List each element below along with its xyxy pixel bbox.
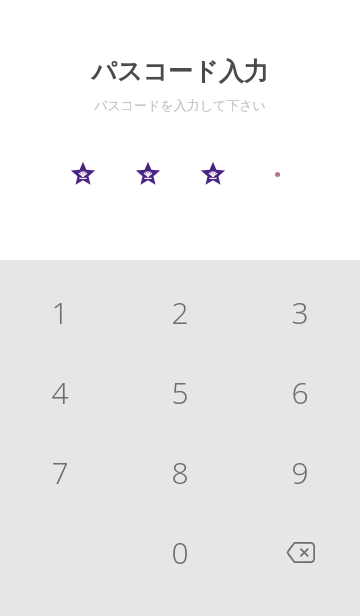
button[interactable]: 4	[10, 352, 110, 432]
staticText: 7	[51, 452, 69, 493]
staticText: 1	[51, 292, 69, 333]
staticText: パスコードを入力して下さい	[94, 97, 266, 113]
staticText: 3	[291, 292, 309, 333]
staticText: 9	[291, 452, 309, 493]
staticText: パスコード入力	[91, 56, 269, 87]
button[interactable]: 1	[10, 272, 110, 352]
staticText: 4	[51, 372, 69, 413]
button[interactable]: 6	[250, 352, 350, 432]
button[interactable]: 2	[130, 272, 230, 352]
button[interactable]: 3	[250, 272, 350, 352]
button[interactable]: 8	[130, 432, 230, 512]
staticText: 2	[171, 292, 189, 333]
staticText: 8	[171, 452, 189, 493]
staticText: 0	[171, 532, 189, 573]
button[interactable]: 9	[250, 432, 350, 512]
button[interactable]: Backspace	[250, 512, 350, 592]
button[interactable]: 0	[130, 512, 230, 592]
staticText: 6	[291, 372, 309, 413]
staticText: 5	[171, 372, 189, 413]
button[interactable]: 7	[10, 432, 110, 512]
button[interactable]: 5	[130, 352, 230, 432]
